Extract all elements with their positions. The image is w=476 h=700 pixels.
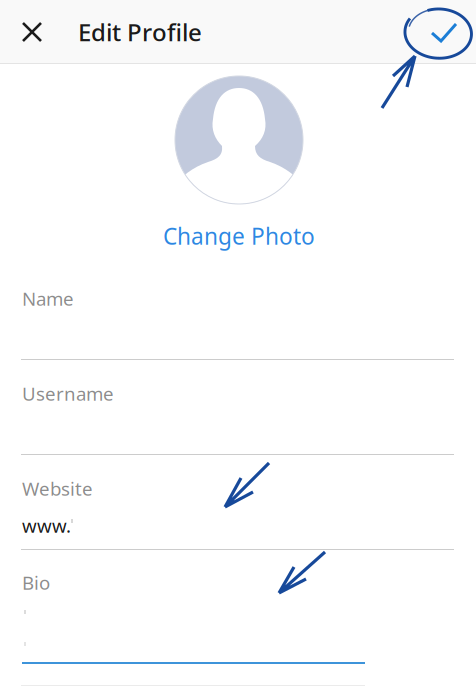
- staticText: Change Photo: [163, 221, 315, 251]
- staticText: Bio: [22, 570, 50, 595]
- staticText: www.: [22, 513, 71, 538]
- staticText: Name: [22, 286, 74, 311]
- staticText: Edit Profile: [78, 16, 202, 48]
- button[interactable]: Profile photo: [175, 76, 303, 204]
- button[interactable]: Change Photo: [151, 212, 327, 260]
- button[interactable]: Save: [412, 1, 476, 64]
- staticText: Website: [22, 476, 93, 501]
- staticText: Username: [22, 381, 114, 406]
- button[interactable]: Close: [0, 1, 64, 63]
